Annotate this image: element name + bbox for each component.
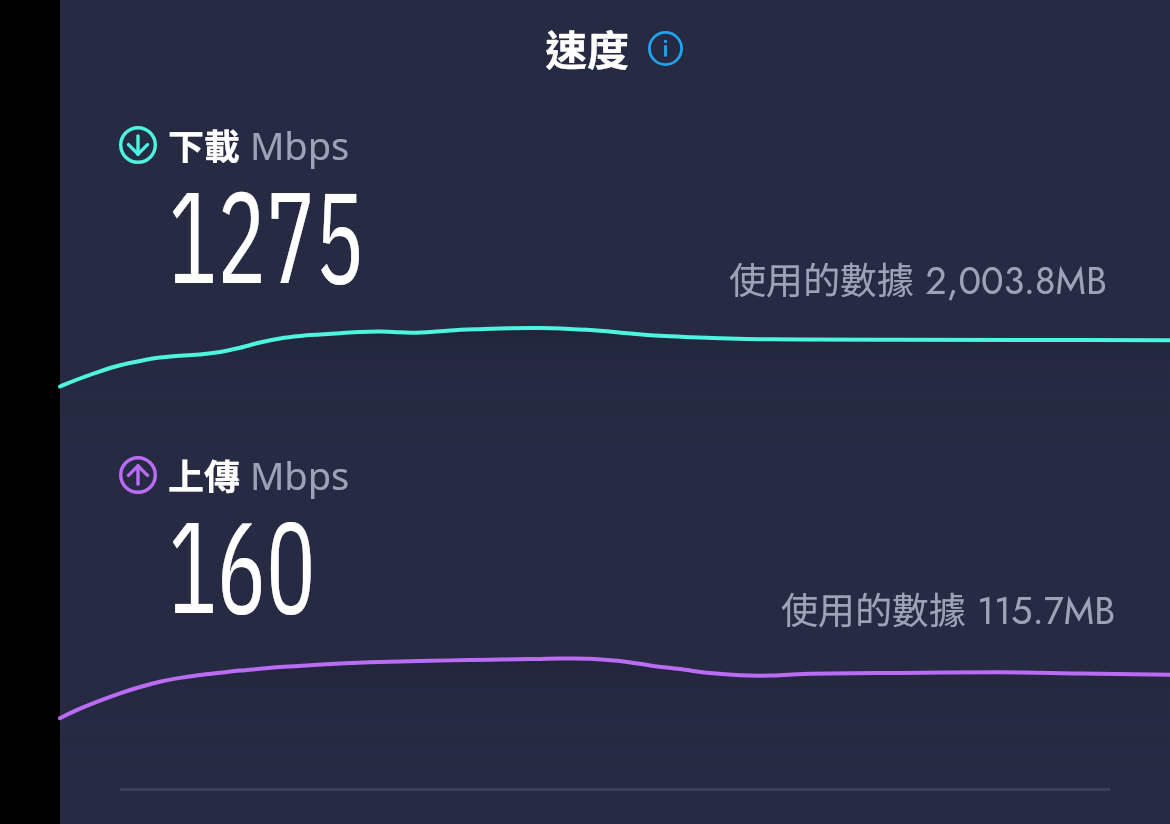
staticText: 160 (168, 482, 316, 648)
button[interactable]: Download (119, 118, 350, 171)
other: Upload (119, 456, 157, 494)
staticText: 使用的數據 2,003.8MB (729, 251, 1108, 308)
staticText: 下載 Mbps (168, 118, 350, 171)
other: Download (119, 126, 157, 164)
staticText: 1275 (168, 152, 365, 318)
button[interactable]: 速度 (545, 17, 684, 78)
other: Info (648, 31, 683, 66)
button[interactable]: Upload (119, 448, 350, 501)
staticText: 使用的數據 115.7MB (781, 581, 1116, 638)
staticText: 速度 (545, 17, 630, 78)
staticText: 上傳 Mbps (168, 448, 350, 501)
